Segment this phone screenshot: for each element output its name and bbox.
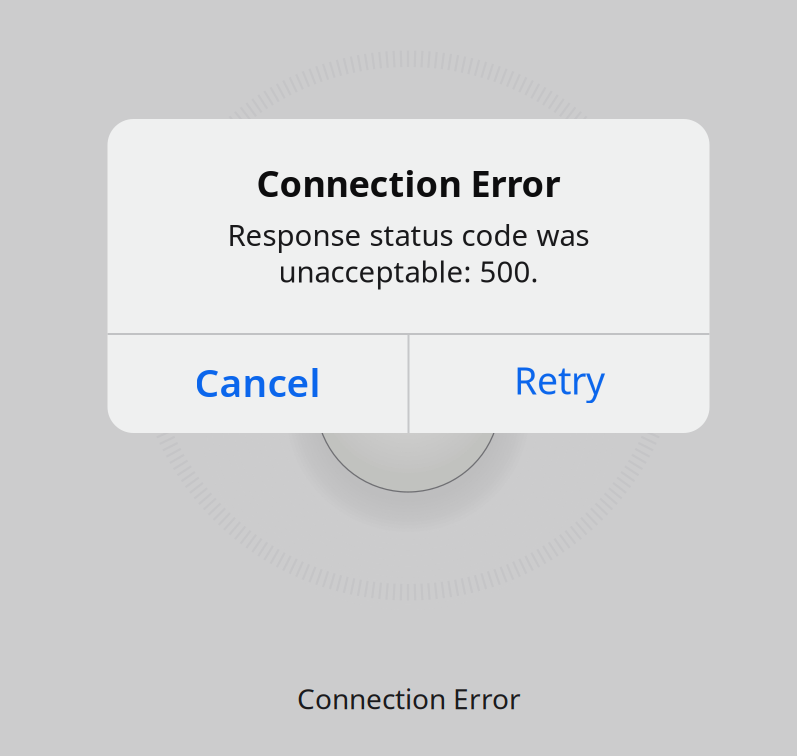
staticText: Response status code was [227, 215, 589, 254]
button[interactable]: Retry [409, 331, 709, 429]
staticText: Retry [514, 355, 605, 405]
staticText: Connection Error [297, 680, 521, 717]
button[interactable]: Cancel [107, 333, 407, 431]
staticText: Cancel [194, 356, 320, 408]
staticText: unacceptable: 500. [278, 251, 538, 290]
staticText: Connection Error [256, 159, 560, 207]
